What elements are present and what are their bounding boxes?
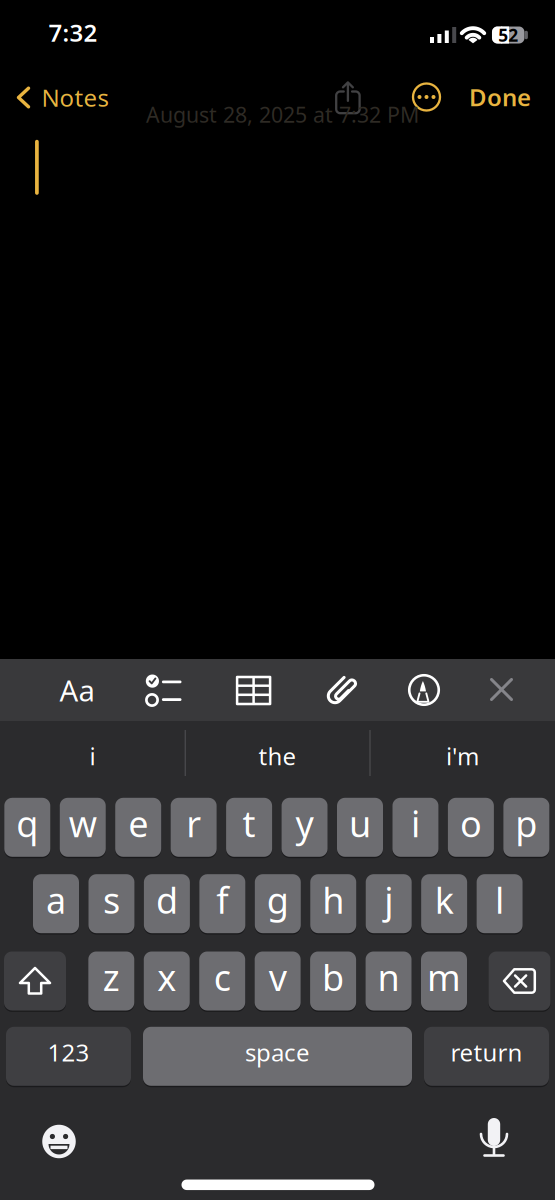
staticText: Done [469,81,531,113]
staticText: x [157,953,176,1001]
staticText: l [495,876,504,924]
button[interactable]: Dictate [472,1116,516,1164]
staticText: y [296,799,314,847]
staticText: the [258,740,296,772]
button[interactable]: Delete [488,950,550,1011]
button[interactable]: i'm [372,725,552,787]
button[interactable]: z [88,950,134,1011]
staticText: p [515,799,537,847]
button[interactable]: i [392,797,438,858]
staticText: g [267,876,289,924]
staticText: i [89,740,95,772]
button[interactable]: Attach [324,671,358,707]
staticText: Aa [59,670,94,709]
staticText: m [427,953,461,1001]
button[interactable]: More [410,81,442,113]
button[interactable]: y [282,797,328,858]
staticText: 123 [47,1036,89,1068]
staticText: h [322,876,344,924]
staticText: f [216,876,228,924]
button[interactable]: v [255,950,301,1011]
staticText: q [16,799,38,847]
button[interactable]: t [226,797,272,858]
button[interactable]: Dismiss keyboard [479,667,523,711]
button[interactable]: k [421,873,467,934]
button[interactable]: space [143,1026,412,1087]
staticText: n [378,953,400,1001]
button[interactable]: g [255,873,301,934]
button[interactable]: return [424,1026,549,1087]
staticText: k [435,876,454,924]
staticText: o [460,799,482,847]
staticText: August 28, 2025 at 7:32 PM [146,100,419,129]
button[interactable]: Markup [407,673,441,707]
button[interactable]: r [171,797,217,858]
staticText: d [156,876,178,924]
staticText: e [128,799,148,847]
staticText: a [46,876,66,924]
button[interactable]: f [199,873,245,934]
button[interactable]: l [477,873,523,934]
staticText: i [411,799,420,847]
button[interactable]: Share [334,81,364,119]
staticText: r [186,799,201,847]
button[interactable]: w [60,797,106,858]
staticText: 52 [498,23,518,46]
staticText: b [322,953,344,1001]
button[interactable]: Table [235,675,272,706]
staticText: Notes [41,82,108,113]
button[interactable]: e [115,797,161,858]
button[interactable]: o [448,797,494,858]
button[interactable]: Checklist [142,669,186,711]
button[interactable]: d [144,873,190,934]
staticText: 7:32 [48,17,97,48]
button[interactable]: x [144,950,190,1011]
staticText: c [214,953,231,1001]
button[interactable]: Shift [4,950,66,1011]
button[interactable]: q [4,797,50,858]
button[interactable]: Emoji [37,1119,81,1163]
staticText: j [384,876,393,924]
button[interactable]: s [88,873,134,934]
button[interactable]: m [421,950,467,1011]
button[interactable]: Format [50,663,104,717]
button[interactable]: p [503,797,549,858]
button[interactable]: the [187,725,367,787]
button[interactable]: Back to Notes [15,74,108,121]
button[interactable]: b [310,950,356,1011]
staticText: s [103,876,120,924]
button[interactable]: j [366,873,412,934]
staticText: t [243,799,256,847]
button[interactable]: h [310,873,356,934]
staticText: space [245,1036,310,1068]
staticText: return [450,1036,522,1068]
button[interactable]: u [337,797,383,858]
staticText: u [349,799,371,847]
button[interactable]: n [366,950,412,1011]
button[interactable]: a [33,873,79,934]
button[interactable]: Done [469,73,531,121]
staticText: w [69,799,97,847]
button[interactable]: c [199,950,245,1011]
button[interactable]: i [2,725,182,787]
staticText: v [269,953,287,1001]
button[interactable]: 123 [6,1026,131,1087]
staticText: z [103,953,120,1001]
staticText: i'm [446,740,479,772]
